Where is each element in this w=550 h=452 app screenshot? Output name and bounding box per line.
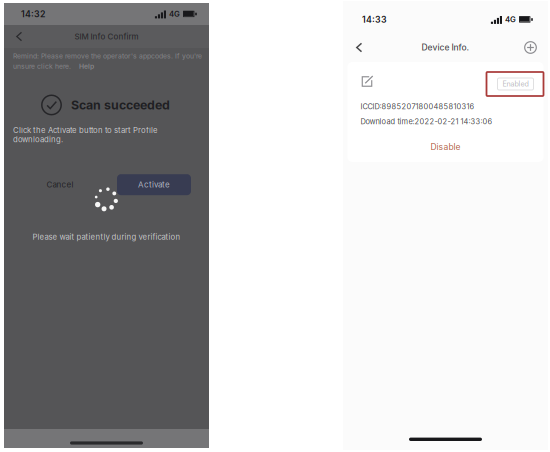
staticText: ICCID:89852071800485810316 [360,102,474,111]
button[interactable]: Disable [347,134,543,160]
staticText: Device Info. [421,42,469,53]
staticText: unsure click here. [13,62,71,70]
button[interactable]: Add profile [521,38,540,57]
staticText: Help [79,62,94,70]
staticText: Activate [138,180,170,189]
button[interactable]: Cancel [30,174,90,195]
staticText: Cancel [46,180,73,189]
staticText: 4G [169,9,180,19]
staticText: Click the Activate button to start Profi… [13,125,158,144]
button[interactable]: Help [79,62,94,70]
button[interactable]: Back [352,37,366,57]
button[interactable]: Rename profile [356,71,377,92]
staticText: 4G [505,15,516,24]
staticText: Remind: Please remove the operator's app… [13,52,202,60]
staticText: 14:32 [21,9,45,19]
staticText: Please wait patiently during verificatio… [32,232,180,242]
staticText: SIM Info Confirm [74,32,138,41]
staticText: Enabled [502,80,528,88]
staticText: 14:33 [362,14,387,25]
staticText: Download time:2022-02-21 14:33:06 [360,117,492,126]
button[interactable]: Activate [117,174,191,195]
button[interactable]: Back [12,26,26,46]
button[interactable]: Enabled [486,72,543,96]
staticText: Scan succeeded [71,97,170,112]
staticText: Disable [430,142,460,152]
